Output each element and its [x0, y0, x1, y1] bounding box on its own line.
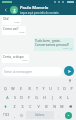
button[interactable]: Tudo bem, grato. Conversamos pessoal? [34, 38, 74, 51]
button[interactable]: Olá! [2, 16, 21, 25]
button[interactable]: Certo, a dispo [2, 54, 29, 63]
button[interactable]: O [61, 84, 68, 92]
staticText: . [58, 113, 59, 118]
staticText: V [37, 104, 40, 109]
staticText: K [59, 95, 62, 100]
button[interactable]: W [9, 84, 17, 92]
staticText: C [29, 104, 32, 109]
button[interactable]: A [4, 93, 11, 101]
staticText: F [28, 95, 30, 100]
button[interactable]: Sente ut mensagem [2, 67, 62, 76]
staticText: R [28, 86, 31, 91]
staticText: X [21, 104, 24, 109]
staticText: Certo, a dispo [3, 55, 24, 59]
button[interactable]: T [33, 84, 40, 92]
button[interactable]: D [18, 93, 25, 101]
button[interactable]: Italiano [26, 111, 54, 119]
button[interactable]: Enter [65, 112, 72, 119]
button[interactable]: Send [64, 66, 74, 76]
staticText: Q [4, 86, 7, 91]
button[interactable]: L [64, 93, 72, 101]
button[interactable]: E [17, 84, 25, 92]
staticText: Tudo bem, grato. Conversamos pessoal? [35, 39, 69, 47]
button[interactable]: Contact photo [10, 6, 18, 14]
button[interactable]: Z [10, 102, 18, 110]
staticText: 12:12 [63, 47, 69, 50]
staticText: T [36, 86, 38, 91]
staticText: Como vai? [3, 27, 19, 31]
staticText: Y [42, 86, 45, 91]
button[interactable]: K [56, 93, 64, 101]
button[interactable]: F [25, 93, 32, 101]
staticText: toque aqui para info do contato [20, 11, 59, 15]
staticText: L [67, 95, 69, 100]
button[interactable]: S [11, 93, 18, 101]
staticText: H [43, 95, 46, 100]
staticText: , [14, 113, 15, 118]
button[interactable]: C [26, 102, 34, 110]
staticText: P [70, 86, 73, 91]
staticText: 12:15 [22, 59, 28, 62]
button[interactable]: N [50, 102, 58, 110]
button[interactable]: J [48, 93, 56, 101]
button[interactable]: Back [2, 6, 10, 14]
button[interactable]: Voice input [68, 79, 72, 83]
staticText: N [53, 104, 56, 109]
staticText: G [35, 95, 38, 100]
button[interactable]: ?123 [1, 111, 11, 119]
staticText: Olá! [3, 17, 9, 21]
staticText: W [11, 86, 15, 91]
staticText: 12:05 [19, 31, 25, 34]
button[interactable]: , [11, 111, 18, 119]
staticText: Paulo Marcelo [20, 5, 49, 11]
button[interactable]: Como vai? [2, 26, 26, 35]
button[interactable]: I [54, 84, 61, 92]
staticText: O [63, 86, 66, 91]
staticText: Italiano [35, 113, 45, 117]
staticText: U [49, 86, 52, 91]
staticText: M [60, 104, 64, 109]
staticText: S [14, 95, 16, 100]
button[interactable]: U [47, 84, 54, 92]
staticText: E [20, 86, 22, 91]
button[interactable]: X [18, 102, 26, 110]
button[interactable]: H [40, 93, 48, 101]
button[interactable]: . [55, 111, 62, 119]
button[interactable]: Shift [1, 102, 10, 110]
staticText: D [20, 95, 23, 100]
staticText: J [52, 95, 53, 100]
staticText: B [45, 104, 48, 109]
staticText: ?123 [3, 113, 10, 117]
staticText: 12:05 [14, 21, 20, 24]
button[interactable]: Backspace [66, 102, 75, 110]
button[interactable]: Q [1, 84, 9, 92]
staticText: Sente ut mensagem [4, 70, 33, 74]
button[interactable]: V [34, 102, 42, 110]
button[interactable]: Emoji [18, 111, 25, 119]
button[interactable]: P [68, 84, 75, 92]
staticText: I [57, 86, 59, 91]
button[interactable]: B [42, 102, 50, 110]
button[interactable]: Paulo Marcelo [20, 5, 73, 15]
button[interactable]: M [58, 102, 66, 110]
button[interactable]: R [25, 84, 33, 92]
button[interactable]: Y [40, 84, 47, 92]
button[interactable]: G [32, 93, 40, 101]
staticText: A [6, 95, 9, 100]
staticText: Z [13, 104, 16, 109]
